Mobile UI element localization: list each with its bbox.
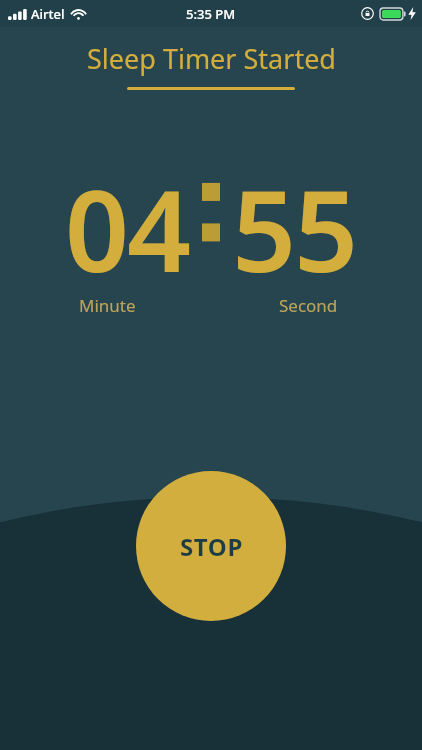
- staticText: 04: [65, 152, 190, 276]
- button[interactable]: Stop sleep timer: [136, 471, 286, 621]
- staticText: Second: [279, 294, 338, 317]
- staticText: 55: [232, 152, 357, 276]
- staticText: Airtel: [31, 5, 65, 23]
- staticText: Minute: [79, 294, 136, 317]
- staticText: Sleep Timer Started: [87, 40, 336, 77]
- staticText: STOP: [180, 530, 243, 563]
- staticText: 5:35 PM: [186, 5, 236, 23]
